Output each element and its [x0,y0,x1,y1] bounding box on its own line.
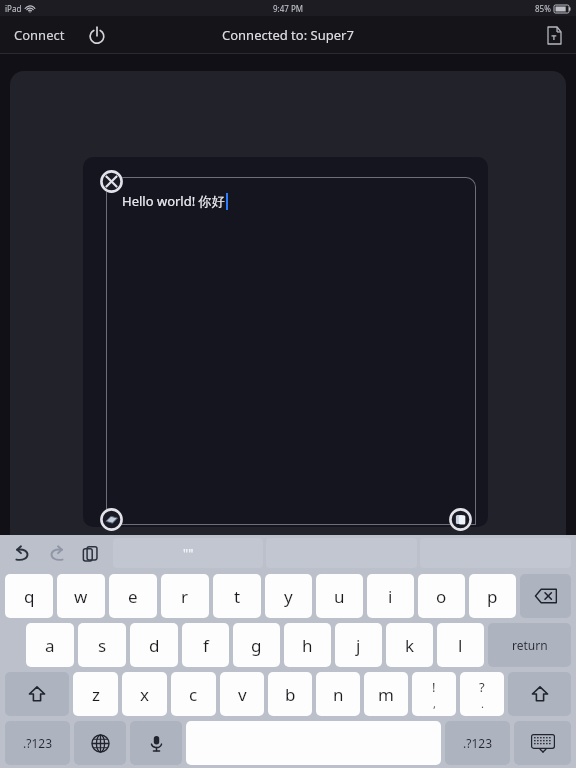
button[interactable]: Hide keyboard [514,721,571,765]
staticText: , [433,696,436,711]
button[interactable]: v [220,672,264,716]
button[interactable]: Redo [39,536,73,570]
staticText: i [388,585,393,608]
button[interactable]: l [437,623,484,667]
button[interactable]: ! [412,672,456,716]
button[interactable]: w [57,574,105,618]
button[interactable]: Text document [533,19,576,52]
button[interactable]: s [78,623,126,667]
button[interactable]: Power [79,19,115,51]
staticText: d [149,634,160,657]
staticText: . [481,696,484,711]
button[interactable]: m [364,672,408,716]
staticText: g [251,634,262,657]
staticText: p [487,585,498,608]
button[interactable]: Shift [5,672,69,716]
staticText: e [128,585,138,608]
staticText: c [189,683,198,706]
button[interactable]: o [418,574,465,618]
staticText: y [284,585,293,608]
staticText: "" [183,545,194,561]
staticText: 9:47 PM [273,3,304,14]
button[interactable]: i [367,574,414,618]
button[interactable]: Undo [5,536,39,570]
staticText: q [24,585,35,608]
button[interactable]: Language [74,721,126,765]
button[interactable]: j [335,623,382,667]
button[interactable]: k [386,623,433,667]
staticText: r [181,585,189,608]
staticText: j [356,634,361,657]
staticText: Connect [14,26,65,44]
staticText: ? [479,678,485,696]
button[interactable]: .?123 [445,721,510,765]
staticText: n [333,683,344,706]
staticText: l [458,634,463,657]
button[interactable]: x [122,672,167,716]
button[interactable]: Backspace [520,574,571,618]
button[interactable]: ? [460,672,504,716]
staticText: a [45,634,55,657]
staticText: ! [432,678,436,696]
button[interactable]: n [316,672,360,716]
button[interactable]: u [316,574,363,618]
staticText: m [378,683,394,706]
button[interactable]: r [161,574,209,618]
staticText: .?123 [463,735,493,751]
button[interactable]: Connect [0,18,79,52]
button[interactable]: Close [100,170,123,193]
staticText: z [92,683,100,706]
button[interactable]: d [130,623,178,667]
button[interactable]: t [213,574,261,618]
button[interactable]: y [265,574,312,618]
button[interactable]: .?123 [5,721,70,765]
button[interactable]: return [488,623,571,667]
staticText: iPad [5,3,22,14]
button[interactable]: h [284,623,331,667]
button[interactable]: Copy [449,508,472,531]
button[interactable]: a [26,623,74,667]
button[interactable]: f [182,623,229,667]
staticText: v [238,683,247,706]
staticText: w [74,585,88,608]
button[interactable]: p [469,574,516,618]
button[interactable]: q [5,574,53,618]
button[interactable]: c [171,672,216,716]
button[interactable]: b [268,672,312,716]
button[interactable]: Shift right [508,672,571,716]
staticText: k [405,634,415,657]
staticText: .?123 [23,735,53,751]
staticText: b [285,683,296,706]
staticText: 85% [535,3,551,14]
staticText: f [203,634,209,657]
staticText: h [302,634,313,657]
button[interactable]: Erase [100,508,123,531]
staticText: Connected to: Super7 [222,26,354,44]
staticText: u [334,585,345,608]
staticText: t [234,585,241,608]
button[interactable]: g [233,623,280,667]
staticText: Hello world! 你好 [122,192,225,210]
staticText: x [140,683,149,706]
staticText: o [436,585,447,608]
staticText: s [98,634,107,657]
button[interactable]: Dictation [130,721,182,765]
button[interactable]: e [109,574,157,618]
button[interactable]: Paste [73,536,107,570]
staticText: return [512,637,548,653]
button[interactable]: z [73,672,118,716]
